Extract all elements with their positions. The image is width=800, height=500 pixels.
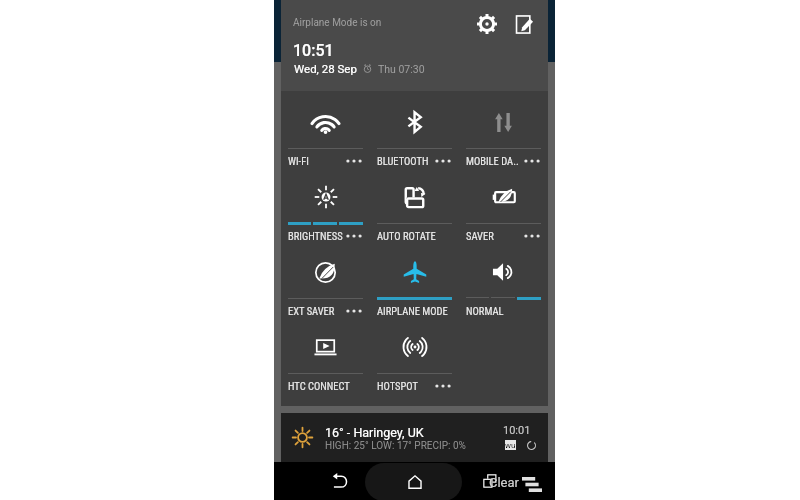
button[interactable]: 16° - Haringey, UK <box>281 413 548 462</box>
staticText: NORMAL <box>466 305 504 317</box>
button[interactable]: EXT SAVER <box>281 241 370 316</box>
staticText: AUTO ROTATE <box>377 230 436 242</box>
staticText: HOTSPOT <box>377 380 418 392</box>
button[interactable]: SAVER <box>459 166 548 241</box>
button[interactable]: AIRPLANE MODE <box>370 241 459 316</box>
staticText: AIRPLANE MODE <box>377 305 448 317</box>
button[interactable]: MOBILE DA.. <box>459 91 548 166</box>
button[interactable]: Refresh weather <box>523 437 539 453</box>
button[interactable]: WI-FI <box>281 91 370 166</box>
staticText: SAVER <box>466 230 494 242</box>
button[interactable]: AUTO ROTATE <box>370 166 459 241</box>
button[interactable]: Sort notifications <box>519 474 545 496</box>
staticText: wu <box>505 441 516 450</box>
staticText: BLUETOOTH <box>377 155 429 167</box>
staticText: EXT SAVER <box>288 305 335 317</box>
staticText: Thu 07:30 <box>378 63 425 75</box>
button[interactable]: Edit quick settings <box>511 11 537 37</box>
button[interactable]: BLUETOOTH <box>370 91 459 166</box>
staticText: 10:01 <box>503 424 531 437</box>
button[interactable]: Settings <box>474 11 500 37</box>
staticText: Clear <box>489 475 519 490</box>
staticText: HTC CONNECT <box>288 380 350 392</box>
button[interactable]: NORMAL <box>459 241 548 316</box>
staticText: WI-FI <box>288 155 309 167</box>
staticText: Airplane Mode is on <box>293 17 382 29</box>
button[interactable]: Recent apps <box>478 470 501 493</box>
button[interactable]: Back <box>328 469 352 493</box>
staticText: Wed, 28 Sep <box>294 62 357 75</box>
staticText: MOBILE DA.. <box>466 155 519 167</box>
staticText: 16° - Haringey, UK <box>325 425 424 440</box>
button[interactable]: BRIGHTNESS <box>281 166 370 241</box>
staticText: BRIGHTNESS <box>288 230 343 242</box>
staticText: 10:51 <box>293 41 334 60</box>
button[interactable]: HOTSPOT <box>370 316 459 391</box>
staticText: HIGH: 25° LOW: 17° PRECIP: 0% <box>325 440 466 452</box>
button[interactable]: Home <box>365 463 462 500</box>
button[interactable]: HTC CONNECT <box>281 316 370 391</box>
